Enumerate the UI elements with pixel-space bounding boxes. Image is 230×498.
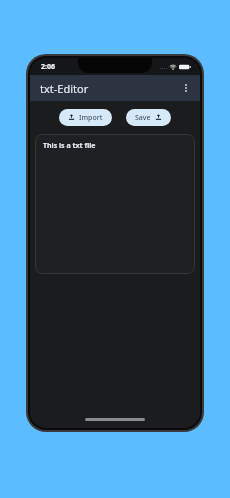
- button[interactable]: Import: [59, 109, 112, 126]
- button[interactable]: More options: [176, 78, 196, 98]
- staticText: 2:06: [41, 62, 55, 72]
- staticText: Save: [135, 113, 151, 123]
- button[interactable]: Save: [126, 109, 171, 126]
- staticText: This is a txt file: [43, 141, 96, 151]
- button[interactable]: This is a txt file: [35, 134, 195, 274]
- staticText: txt-Editor: [40, 81, 89, 96]
- staticText: Import: [79, 113, 103, 123]
